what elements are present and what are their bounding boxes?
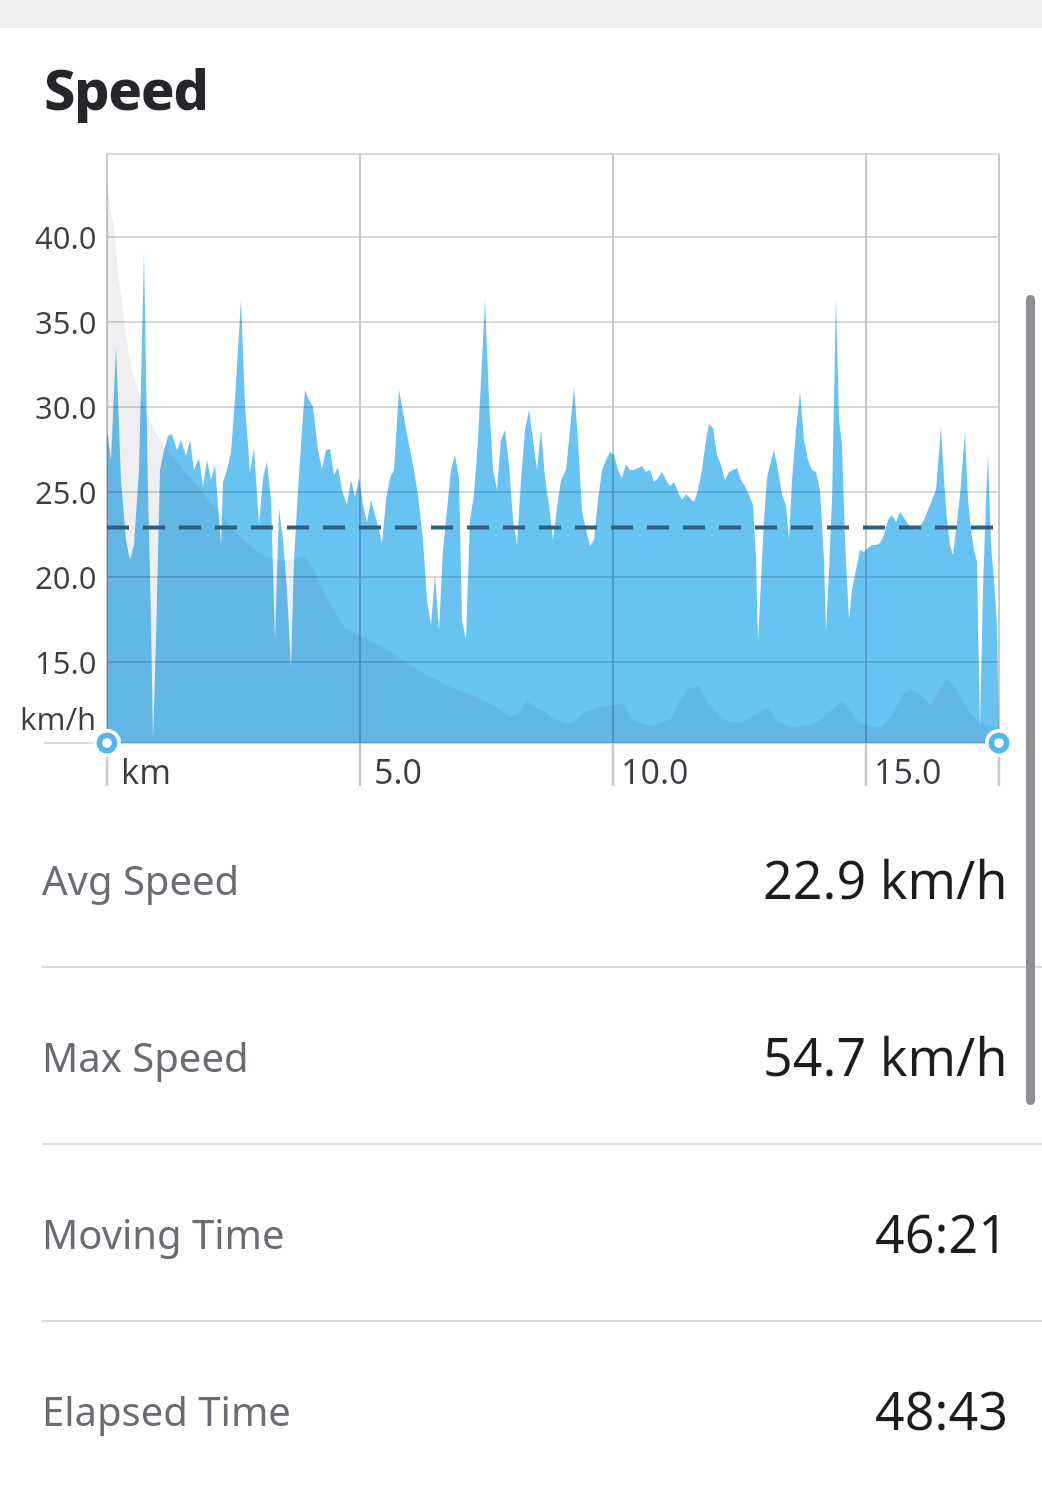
staticText: 40.0 xyxy=(35,216,97,258)
button[interactable]: Elapsed Time xyxy=(0,1322,1042,1497)
staticText: km xyxy=(121,748,171,794)
button[interactable]: Moving Time xyxy=(0,1145,1042,1320)
staticText: 35.0 xyxy=(35,301,97,343)
staticText: Moving Time xyxy=(42,1206,285,1260)
staticText: 15.0 xyxy=(874,748,942,794)
staticText: 54.7 km/h xyxy=(763,1020,1008,1091)
staticText: 48:43 xyxy=(875,1374,1008,1445)
staticText: 20.0 xyxy=(35,556,97,598)
staticText: Elapsed Time xyxy=(42,1383,291,1437)
staticText: Avg Speed xyxy=(42,852,240,906)
staticText: 46:21 xyxy=(875,1197,1008,1268)
button[interactable]: Max Speed xyxy=(0,968,1042,1143)
staticText: Speed xyxy=(44,50,208,126)
staticText: 25.0 xyxy=(35,471,97,513)
staticText: 30.0 xyxy=(35,386,97,428)
staticText: 22.9 km/h xyxy=(763,843,1008,914)
staticText: km/h xyxy=(20,697,97,739)
staticText: Max Speed xyxy=(42,1029,249,1083)
staticText: 15.0 xyxy=(35,641,97,683)
staticText: 5.0 xyxy=(374,748,423,794)
staticText: 10.0 xyxy=(621,748,689,794)
button[interactable]: Avg Speed xyxy=(0,791,1042,966)
